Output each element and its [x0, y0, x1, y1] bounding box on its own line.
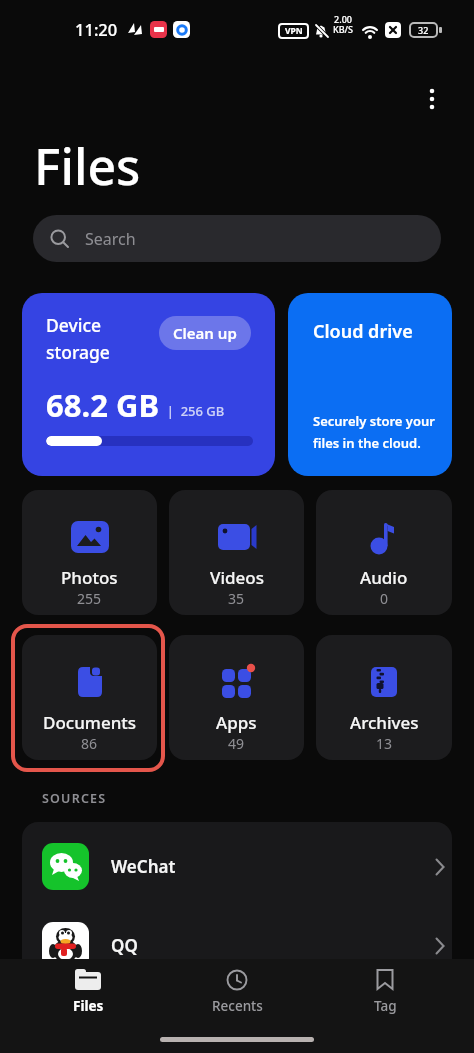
button[interactable]: Videos: [169, 490, 304, 615]
staticText: 11:20: [75, 18, 118, 40]
staticText: 49: [228, 734, 245, 753]
staticText: 68.2 GB: [46, 384, 160, 426]
button[interactable]: Clean up: [159, 316, 251, 350]
staticText: Search: [85, 228, 136, 250]
staticText: | 256 GB: [160, 402, 225, 420]
staticText: Archives: [350, 711, 419, 734]
staticText: 32: [418, 24, 429, 36]
staticText: Videos: [210, 566, 264, 589]
button[interactable]: Device storage: [22, 293, 275, 476]
staticText: 2.00 KB/S: [333, 13, 353, 35]
staticText: Documents: [43, 711, 137, 734]
staticText: 13: [376, 734, 393, 753]
button[interactable]: WeChat: [22, 827, 452, 906]
staticText: WeChat: [111, 855, 176, 878]
button[interactable]: Audio: [316, 490, 452, 615]
staticText: Cloud drive: [313, 319, 413, 344]
staticText: Apps: [216, 711, 257, 734]
staticText: Clean up: [173, 323, 237, 343]
staticText: 35: [228, 589, 245, 608]
staticText: SOURCES: [42, 790, 107, 807]
button[interactable]: Search: [33, 215, 441, 262]
button[interactable]: Photos: [22, 490, 157, 615]
button[interactable]: Recents: [177, 967, 297, 1029]
staticText: Photos: [61, 566, 118, 589]
staticText: Files: [73, 997, 104, 1015]
staticText: Files: [34, 132, 141, 200]
button[interactable]: QQ: [22, 906, 452, 985]
staticText: 0: [380, 589, 389, 608]
button[interactable]: [417, 84, 447, 114]
button[interactable]: Cloud drive: [288, 293, 452, 476]
button[interactable]: Apps: [169, 635, 304, 760]
button[interactable]: Files: [28, 967, 148, 1029]
staticText: Tag: [374, 997, 397, 1015]
button[interactable]: Tag: [325, 967, 445, 1029]
staticText: Securely store your files in the cloud.: [313, 412, 435, 452]
button[interactable]: Archives: [316, 635, 452, 760]
staticText: QQ: [111, 934, 138, 957]
staticText: VPN: [285, 25, 303, 37]
staticText: Device storage: [46, 313, 110, 364]
staticText: 255: [77, 589, 102, 608]
button[interactable]: Documents: [22, 635, 157, 760]
staticText: Recents: [212, 997, 263, 1015]
staticText: 86: [81, 734, 98, 753]
staticText: Audio: [360, 566, 408, 589]
